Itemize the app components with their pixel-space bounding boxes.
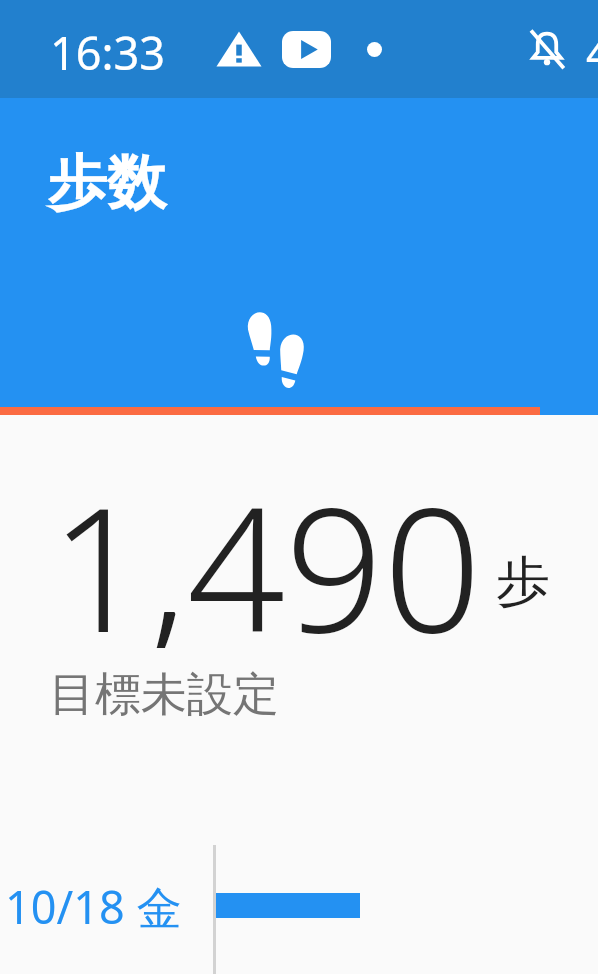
button[interactable]: 1,490 bbox=[0, 448, 598, 648]
staticText: 1,490 bbox=[50, 448, 482, 648]
staticText: 16:33 bbox=[50, 22, 166, 83]
staticText: 4 bbox=[586, 22, 598, 82]
staticText: 歩数 bbox=[48, 146, 166, 220]
other: Warning bbox=[216, 27, 262, 71]
other: Footsteps bbox=[242, 305, 308, 389]
staticText: 歩 bbox=[496, 548, 550, 616]
other: YouTube bbox=[282, 31, 331, 68]
button[interactable]: 10/18 金 bbox=[0, 838, 598, 974]
other: Notifications silenced bbox=[526, 27, 568, 71]
button[interactable]: 目標未設定 bbox=[49, 666, 279, 724]
staticText: 10/18 金 bbox=[5, 876, 182, 937]
